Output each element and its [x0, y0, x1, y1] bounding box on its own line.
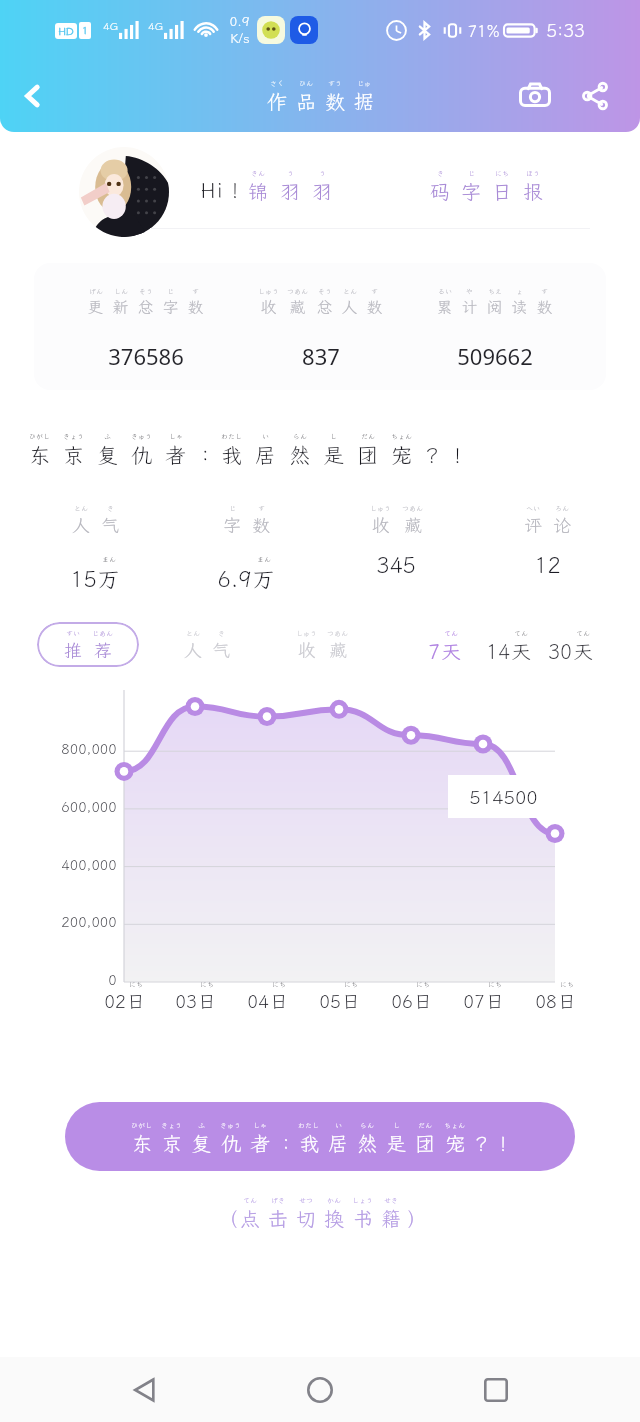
- staticText: ！: [447, 441, 464, 469]
- staticText: 品: [296, 88, 316, 114]
- button[interactable]: Recents: [465, 1359, 527, 1421]
- staticText: 14: [486, 638, 510, 664]
- staticText: にち: [416, 980, 430, 989]
- staticText: 收: [260, 296, 277, 317]
- staticText: さく: [270, 79, 284, 88]
- staticText: 据: [354, 88, 374, 114]
- staticText: 藏: [289, 296, 306, 317]
- staticText: 日: [270, 989, 288, 1013]
- staticText: 人: [72, 513, 90, 537]
- staticText: そう: [139, 287, 153, 296]
- staticText: ）: [407, 1205, 423, 1231]
- staticText: 天: [573, 638, 593, 664]
- button[interactable]: （: [213, 1188, 428, 1236]
- staticText: 1: [82, 24, 88, 37]
- staticText: 羽: [312, 178, 332, 204]
- staticText: 400,000: [61, 856, 117, 874]
- staticText: ちょん: [444, 1121, 465, 1130]
- staticText: ？: [471, 1130, 487, 1156]
- staticText: ：: [276, 1130, 292, 1156]
- staticText: 万: [97, 564, 120, 593]
- staticText: き: [437, 169, 444, 178]
- staticText: しゃ: [253, 1121, 267, 1130]
- staticText: 数: [366, 296, 383, 317]
- staticText: 万: [252, 564, 275, 593]
- staticText: へい: [526, 504, 540, 513]
- staticText: 者: [165, 441, 186, 469]
- staticText: 人: [184, 638, 202, 662]
- button[interactable]: Camera: [512, 73, 558, 119]
- button[interactable]: Share: [572, 73, 618, 119]
- staticText: 东: [132, 1130, 152, 1156]
- staticText: 数: [252, 513, 270, 537]
- button[interactable]: 14: [484, 622, 533, 667]
- staticText: 气: [101, 513, 119, 537]
- staticText: じ: [167, 287, 174, 296]
- staticText: 仇: [131, 441, 152, 469]
- staticText: ひん: [299, 79, 313, 88]
- staticText: 08: [535, 989, 557, 1013]
- staticText: 天: [441, 638, 461, 664]
- staticText: 04: [247, 989, 269, 1013]
- staticText: つあん: [402, 504, 423, 513]
- staticText: 作: [267, 88, 287, 114]
- staticText: 然: [357, 1130, 377, 1156]
- staticText: 字: [223, 513, 241, 537]
- staticText: きゅう: [220, 1121, 241, 1130]
- staticText: 我: [299, 1130, 319, 1156]
- staticText: 切: [296, 1205, 316, 1231]
- staticText: 气: [212, 638, 230, 662]
- staticText: きょう: [161, 1121, 182, 1130]
- button[interactable]: Back: [114, 1359, 176, 1421]
- button[interactable]: ひがし: [65, 1102, 575, 1171]
- staticText: し: [330, 432, 337, 441]
- staticText: し: [393, 1121, 400, 1130]
- staticText: 06: [391, 989, 413, 1013]
- button[interactable]: とん: [172, 622, 242, 667]
- button[interactable]: Hi！: [0, 144, 640, 242]
- staticText: 锦: [248, 178, 268, 204]
- staticText: 5:33: [546, 18, 585, 42]
- button[interactable]: げん: [34, 263, 606, 390]
- staticText: かん: [327, 1196, 341, 1205]
- staticText: 击: [268, 1205, 288, 1231]
- staticText: 读: [511, 296, 528, 317]
- staticText: にち: [560, 980, 574, 989]
- staticText: わたし: [298, 1121, 319, 1130]
- button[interactable]: Back: [9, 73, 55, 119]
- staticText: 200,000: [61, 913, 117, 931]
- staticText: 05: [319, 989, 341, 1013]
- staticText: 点: [240, 1205, 260, 1231]
- staticText: き: [107, 504, 114, 513]
- staticText: せき: [384, 1196, 398, 1205]
- staticText: 4G: [103, 19, 118, 33]
- staticText: るい: [438, 287, 452, 296]
- staticText: 团: [357, 441, 378, 469]
- staticText: じ: [468, 169, 475, 178]
- button[interactable]: 30: [546, 622, 595, 667]
- staticText: 评: [524, 513, 542, 537]
- staticText: きん: [251, 169, 265, 178]
- staticText: 日: [198, 989, 216, 1013]
- staticText: 字: [162, 296, 179, 317]
- staticText: 仇: [221, 1130, 241, 1156]
- staticText: 籍: [381, 1205, 401, 1231]
- staticText: 字: [461, 178, 481, 204]
- staticText: 计: [461, 296, 478, 317]
- staticText: てん: [444, 629, 458, 638]
- button[interactable]: しゅう: [287, 622, 357, 667]
- staticText: じあん: [92, 629, 113, 638]
- button[interactable]: Home: [289, 1359, 351, 1421]
- staticText: 人: [341, 296, 358, 317]
- staticText: じゅ: [357, 79, 371, 88]
- staticText: とん: [186, 629, 200, 638]
- button[interactable]: すい: [37, 622, 139, 667]
- staticText: 15: [70, 564, 97, 593]
- staticText: 7: [428, 638, 440, 664]
- staticText: しゅう: [296, 629, 317, 638]
- button[interactable]: 7: [426, 622, 463, 667]
- staticText: 6.9: [217, 564, 252, 593]
- staticText: てん: [243, 1196, 257, 1205]
- staticText: い: [262, 432, 269, 441]
- staticText: しょう: [352, 1196, 373, 1205]
